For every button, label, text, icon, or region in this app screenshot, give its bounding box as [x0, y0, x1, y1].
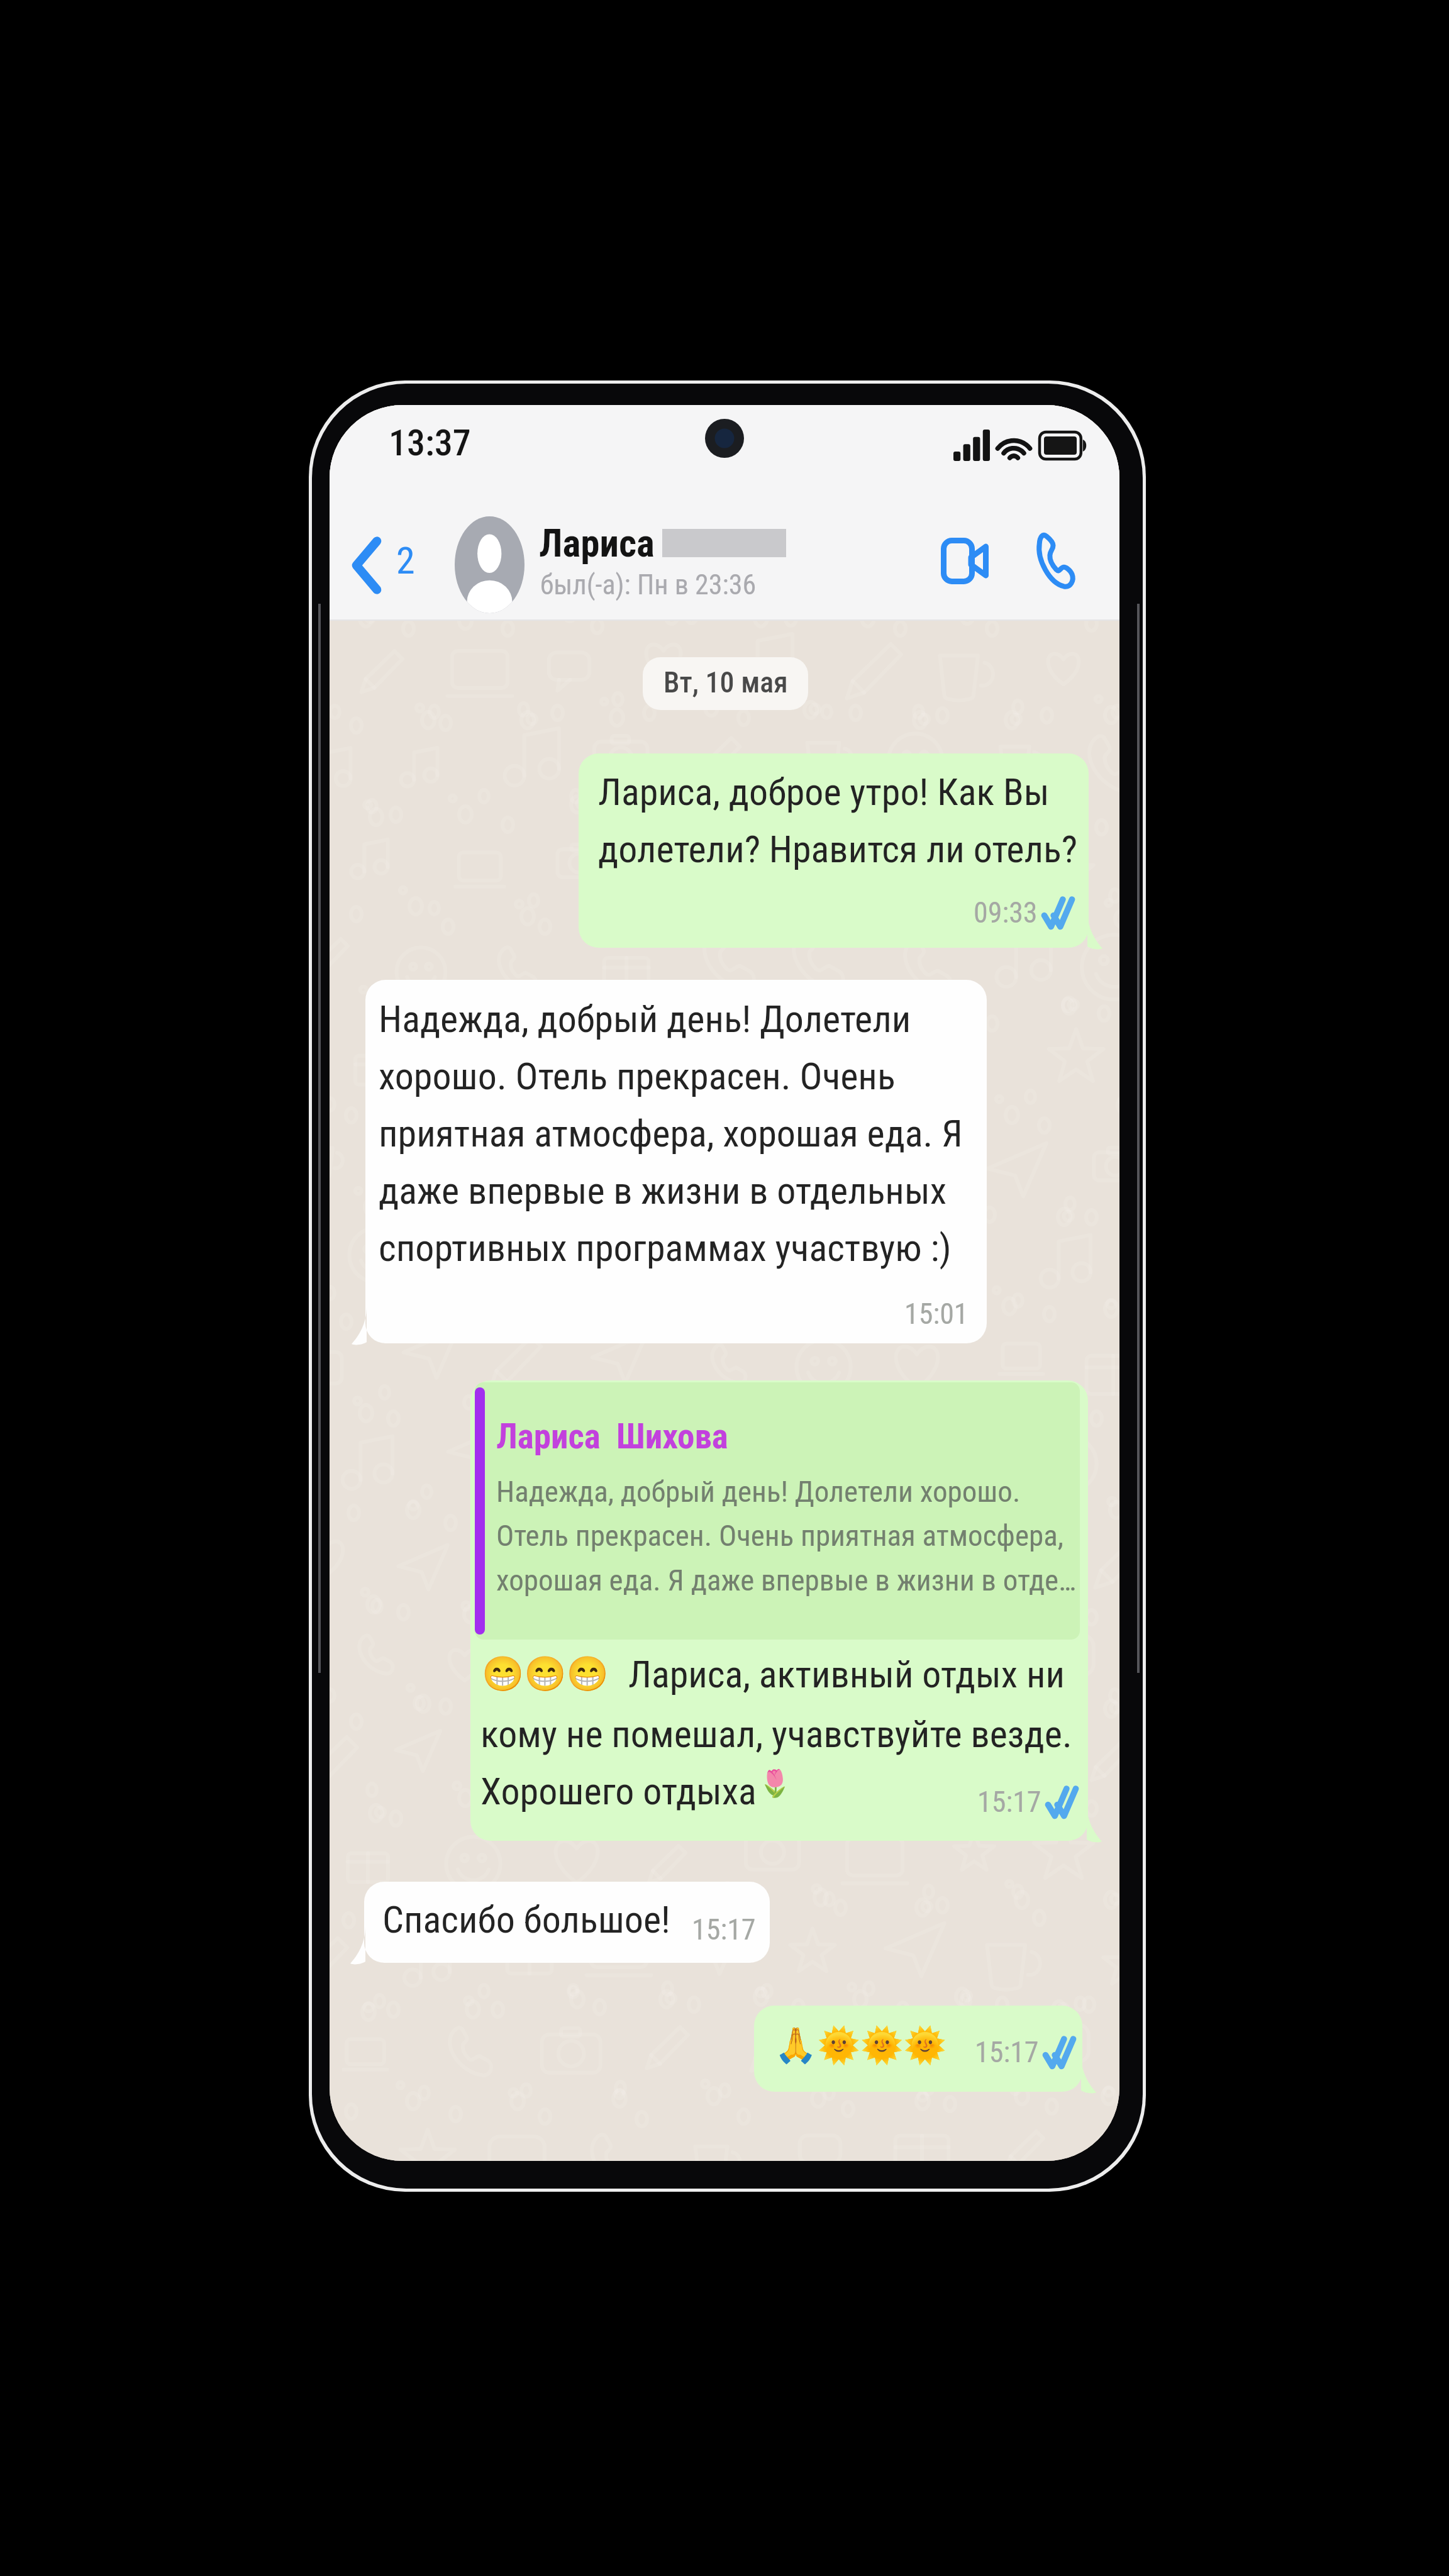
staticText: 🙏🌞🌞🌞: [774, 2025, 947, 2065]
staticText: 😁😁😁: [482, 1654, 609, 1694]
button[interactable]: Надежда, добрый день! Долетели хорошо. О…: [365, 980, 987, 1343]
staticText: Надежда, добрый день! Долетели хорошо. О…: [496, 1474, 1076, 1598]
button[interactable]: Лариса, доброе утро! Как Вы долетели? Нр…: [579, 753, 1089, 948]
staticText: 15:01: [904, 1297, 969, 1331]
button[interactable]: Back, 2 unread: [341, 525, 430, 606]
staticText: Лариса: [539, 521, 655, 565]
staticText: 09:33: [974, 896, 1038, 930]
staticText: 15:17: [975, 2035, 1039, 2069]
staticText: 🌷: [758, 1768, 792, 1799]
button[interactable]: 🙏🌞🌞🌞: [754, 2006, 1082, 2092]
staticText: кому не помешал, учавствуйте везде. Хоро…: [480, 1712, 1072, 1814]
button[interactable]: Contact avatar: [455, 516, 525, 613]
button[interactable]: Лариса: [534, 517, 911, 608]
staticText: 15:17: [977, 1785, 1041, 1819]
staticText: Спасибо большое!: [382, 1897, 670, 1941]
button[interactable]: Video call: [922, 519, 1008, 603]
staticText: Лариса Шихова: [496, 1416, 728, 1457]
button[interactable]: Voice call: [1016, 518, 1096, 604]
button[interactable]: Вт, 10 мая: [643, 657, 808, 710]
staticText: Лариса, доброе утро! Как Вы долетели? Нр…: [598, 770, 1078, 872]
staticText: Вт, 10 мая: [663, 665, 788, 699]
staticText: 15:17: [692, 1913, 756, 1946]
button[interactable]: Лариса Шихова: [470, 1380, 1088, 1841]
button[interactable]: Спасибо большое!: [364, 1882, 770, 1963]
staticText: Лариса, активный отдых ни: [628, 1652, 1065, 1696]
staticText: был(-а): Пн в 23:36: [540, 569, 757, 601]
staticText: 13:37: [389, 421, 471, 464]
staticText: 2: [396, 538, 415, 582]
staticText: Надежда, добрый день! Долетели хорошо. О…: [379, 997, 963, 1270]
